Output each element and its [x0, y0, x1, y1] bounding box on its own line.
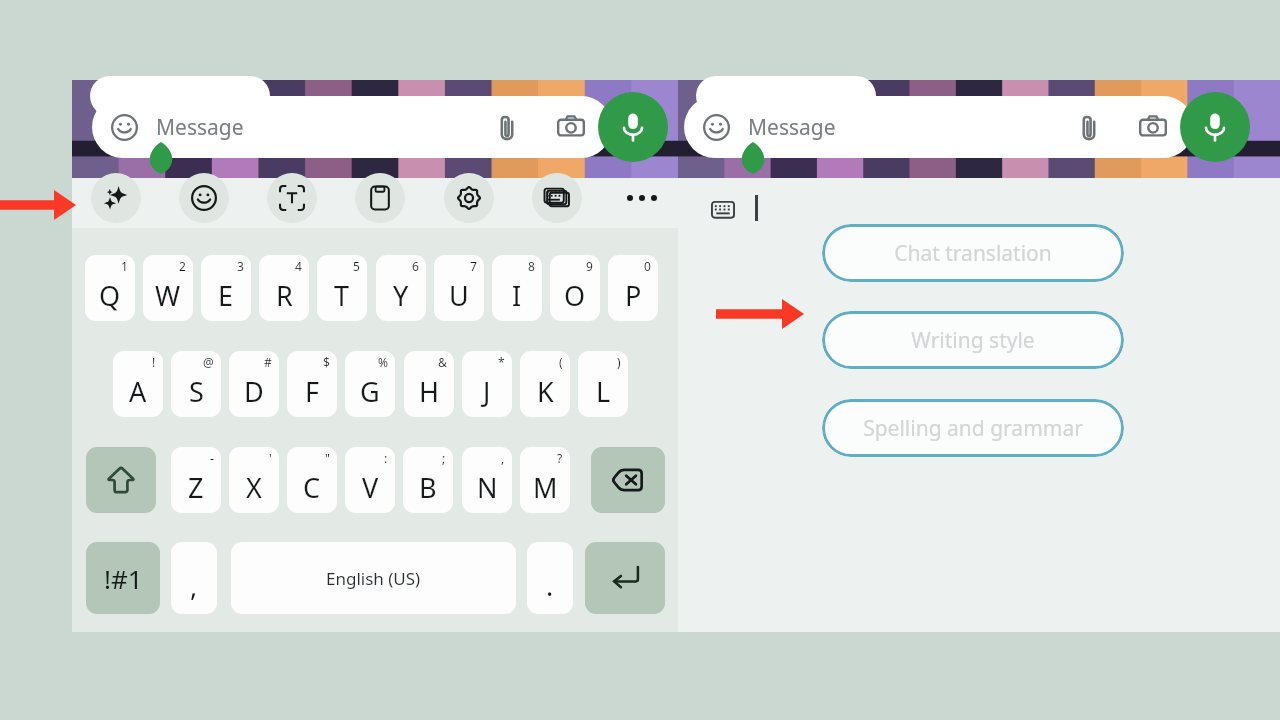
staticText: F [305, 373, 320, 410]
button[interactable]: : [345, 447, 395, 513]
staticText: T [334, 277, 350, 314]
staticText: A [129, 373, 147, 410]
button[interactable]: 3 [201, 255, 251, 321]
button[interactable]: More options [617, 173, 667, 223]
staticText: P [625, 277, 642, 314]
button[interactable]: Spelling and grammar [822, 399, 1124, 457]
staticText: . [546, 567, 554, 604]
button[interactable]: # [229, 351, 279, 417]
button[interactable]: Clipboard [355, 173, 405, 223]
button[interactable]: Camera [1138, 112, 1168, 142]
staticText: 8 [528, 258, 535, 274]
staticText: 6 [412, 258, 419, 274]
button[interactable]: Shift [86, 447, 156, 513]
button[interactable]: ; [403, 447, 453, 513]
button[interactable]: 8 [492, 255, 542, 321]
button[interactable]: Emoji [702, 113, 730, 141]
staticText: U [449, 277, 469, 314]
staticText: K [537, 373, 554, 410]
button[interactable]: ? [520, 447, 570, 513]
staticText: H [419, 373, 440, 410]
button[interactable]: ( [520, 351, 570, 417]
button[interactable]: Emoji [92, 96, 612, 158]
staticText: !#1 [104, 561, 143, 596]
button[interactable]: * [462, 351, 512, 417]
staticText: 5 [353, 258, 360, 274]
staticText: @ [203, 354, 214, 370]
button[interactable]: Keyboard [706, 193, 740, 227]
staticText: Y [393, 277, 409, 314]
button[interactable]: Attach [1074, 112, 1104, 142]
button[interactable]: % [345, 351, 395, 417]
button[interactable]: 0 [608, 255, 658, 321]
staticText: C [303, 469, 321, 506]
button[interactable]: Emoji [684, 96, 1194, 158]
button[interactable]: 9 [550, 255, 600, 321]
button[interactable]: 4 [259, 255, 309, 321]
staticText: ) [617, 354, 621, 370]
staticText: & [438, 354, 447, 370]
button[interactable]: Writing style [822, 311, 1124, 369]
staticText: L [596, 373, 611, 410]
button[interactable]: " [287, 447, 337, 513]
button[interactable]: Keyboard layouts [532, 173, 582, 223]
button[interactable]: ' [229, 447, 279, 513]
button[interactable]: Voice input [598, 92, 668, 162]
staticText: Chat translation [894, 239, 1052, 268]
button[interactable]: Enter [585, 542, 665, 614]
staticText: ( [559, 354, 563, 370]
staticText: Writing style [911, 326, 1035, 355]
staticText: 7 [470, 258, 477, 274]
button[interactable]: 6 [376, 255, 426, 321]
button[interactable]: 5 [317, 255, 367, 321]
button[interactable]: Text scan [267, 173, 317, 223]
button[interactable]: Voice input [1180, 92, 1250, 162]
staticText: Q [99, 277, 121, 314]
button[interactable]: , [171, 542, 217, 614]
staticText: E [218, 277, 234, 314]
staticText: * [498, 354, 505, 370]
button[interactable]: Chat translation [822, 224, 1124, 282]
staticText: R [276, 277, 293, 314]
button[interactable]: Settings [444, 173, 494, 223]
staticText: % [378, 354, 388, 370]
button[interactable]: 1 [85, 255, 135, 321]
button[interactable]: Attach [492, 112, 522, 142]
staticText: Message [156, 113, 244, 142]
button[interactable]: Emoji [179, 173, 229, 223]
staticText: - [210, 450, 214, 466]
staticText: M [533, 469, 558, 506]
button[interactable]: AI assist [91, 173, 141, 223]
button[interactable]: ! [113, 351, 163, 417]
button[interactable]: English (US) [231, 542, 516, 614]
staticText: 0 [644, 258, 651, 274]
button[interactable]: - [171, 447, 221, 513]
button[interactable]: , [462, 447, 512, 513]
button[interactable]: Camera [556, 112, 586, 142]
staticText: Message [748, 113, 836, 142]
button[interactable]: 7 [434, 255, 484, 321]
staticText: D [244, 373, 264, 410]
staticText: , [501, 450, 505, 466]
button[interactable]: !#1 [86, 542, 160, 614]
button[interactable]: . [527, 542, 573, 614]
staticText: V [362, 469, 379, 506]
button[interactable]: Emoji [110, 113, 138, 141]
button[interactable]: Backspace [591, 447, 665, 513]
staticText: G [360, 373, 380, 410]
staticText: 4 [295, 258, 302, 274]
button[interactable]: & [404, 351, 454, 417]
staticText: 2 [179, 258, 186, 274]
button[interactable]: 2 [143, 255, 193, 321]
staticText: Z [188, 469, 204, 506]
button[interactable]: @ [171, 351, 221, 417]
staticText: ' [269, 450, 272, 466]
staticText: B [419, 469, 437, 506]
staticText: X [246, 469, 262, 506]
staticText: O [564, 277, 586, 314]
staticText: 9 [586, 258, 593, 274]
button[interactable]: ) [578, 351, 628, 417]
button[interactable]: $ [287, 351, 337, 417]
staticText: Spelling and grammar [863, 414, 1083, 443]
staticText: 1 [121, 258, 128, 274]
